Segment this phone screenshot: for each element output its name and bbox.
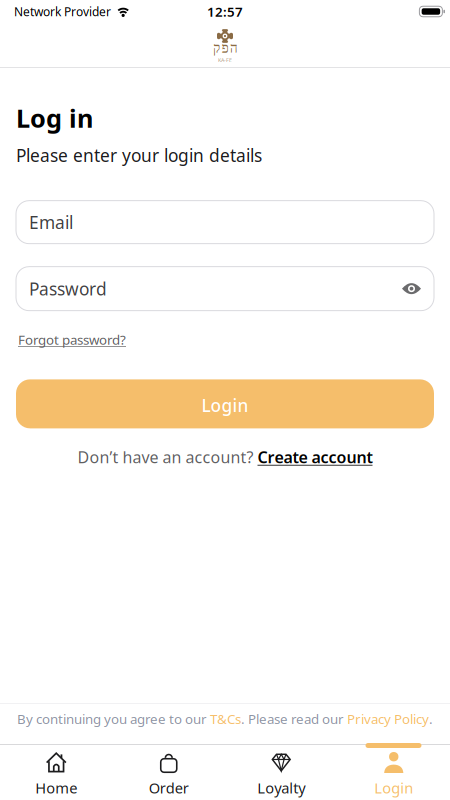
- button[interactable]: Create account: [257, 446, 372, 468]
- staticText: ק: [212, 41, 219, 56]
- button[interactable]: Order: [112, 752, 225, 797]
- button[interactable]: Email: [16, 201, 434, 244]
- staticText: Home: [35, 778, 77, 797]
- staticText: 12:57: [207, 3, 243, 20]
- staticText: Email: [29, 211, 73, 234]
- staticText: KA-FE: [218, 56, 232, 64]
- staticText: .: [429, 710, 433, 728]
- staticText: פ: [221, 41, 228, 56]
- staticText: Password: [29, 277, 107, 300]
- staticText: Don’t have an account?: [77, 446, 257, 468]
- button[interactable]: Home: [0, 752, 112, 797]
- staticText: Login: [201, 394, 248, 417]
- staticText: Log in: [16, 101, 93, 135]
- button[interactable]: Login: [337, 752, 450, 797]
- staticText: T&Cs: [210, 710, 241, 728]
- button[interactable]: Privacy Policy: [347, 710, 429, 728]
- staticText: Create account: [257, 446, 372, 468]
- staticText: . Please read our: [241, 710, 347, 728]
- staticText: ה: [230, 41, 238, 56]
- staticText: Login: [374, 778, 413, 797]
- button[interactable]: Forgot password?: [18, 331, 126, 348]
- staticText: Network Provider: [14, 3, 111, 19]
- staticText: Privacy Policy: [347, 710, 429, 728]
- button[interactable]: Password: [16, 267, 434, 311]
- staticText: Please enter your login details: [16, 144, 262, 167]
- button[interactable]: Login: [16, 379, 434, 428]
- staticText: By continuing you agree to our: [17, 710, 210, 728]
- button[interactable]: T&Cs: [210, 710, 241, 728]
- button[interactable]: Show password: [402, 283, 421, 294]
- button[interactable]: Loyalty: [225, 752, 337, 797]
- staticText: Order: [149, 778, 189, 797]
- staticText: Loyalty: [257, 778, 305, 797]
- staticText: Forgot password?: [18, 331, 126, 348]
